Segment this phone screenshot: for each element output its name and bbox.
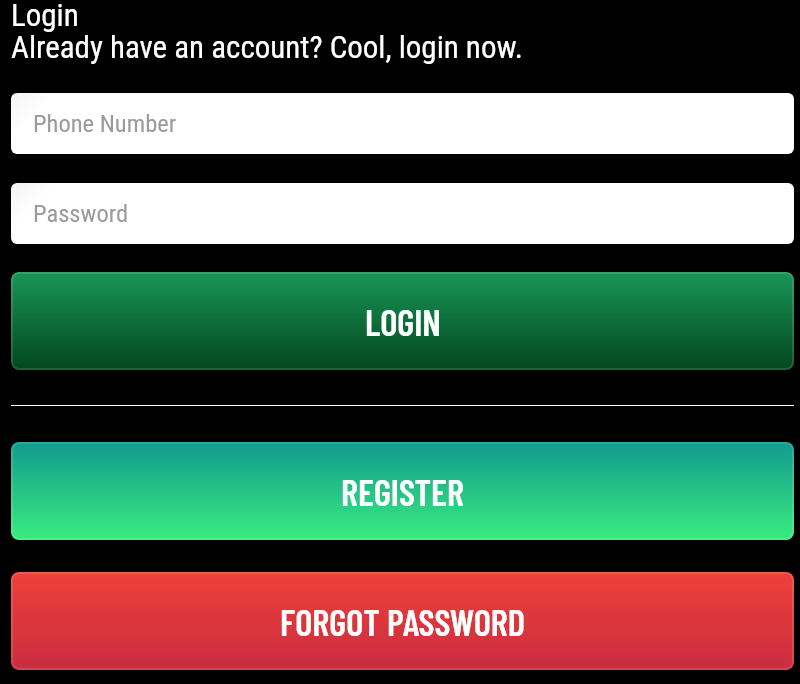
staticText: Password	[33, 199, 129, 228]
staticText: Already have an account? Cool, login now…	[11, 29, 523, 65]
button[interactable]: LOGIN	[11, 272, 794, 370]
button[interactable]: FORGOT PASSWORD	[11, 572, 794, 670]
staticText: FORGOT PASSWORD	[280, 599, 525, 643]
button[interactable]: Phone Number	[11, 93, 794, 154]
button[interactable]: Password	[11, 183, 794, 244]
button[interactable]: REGISTER	[11, 442, 794, 540]
staticText: LOGIN	[365, 299, 441, 343]
staticText: Login	[11, 0, 79, 33]
staticText: REGISTER	[341, 469, 464, 513]
staticText: Phone Number	[33, 109, 177, 138]
